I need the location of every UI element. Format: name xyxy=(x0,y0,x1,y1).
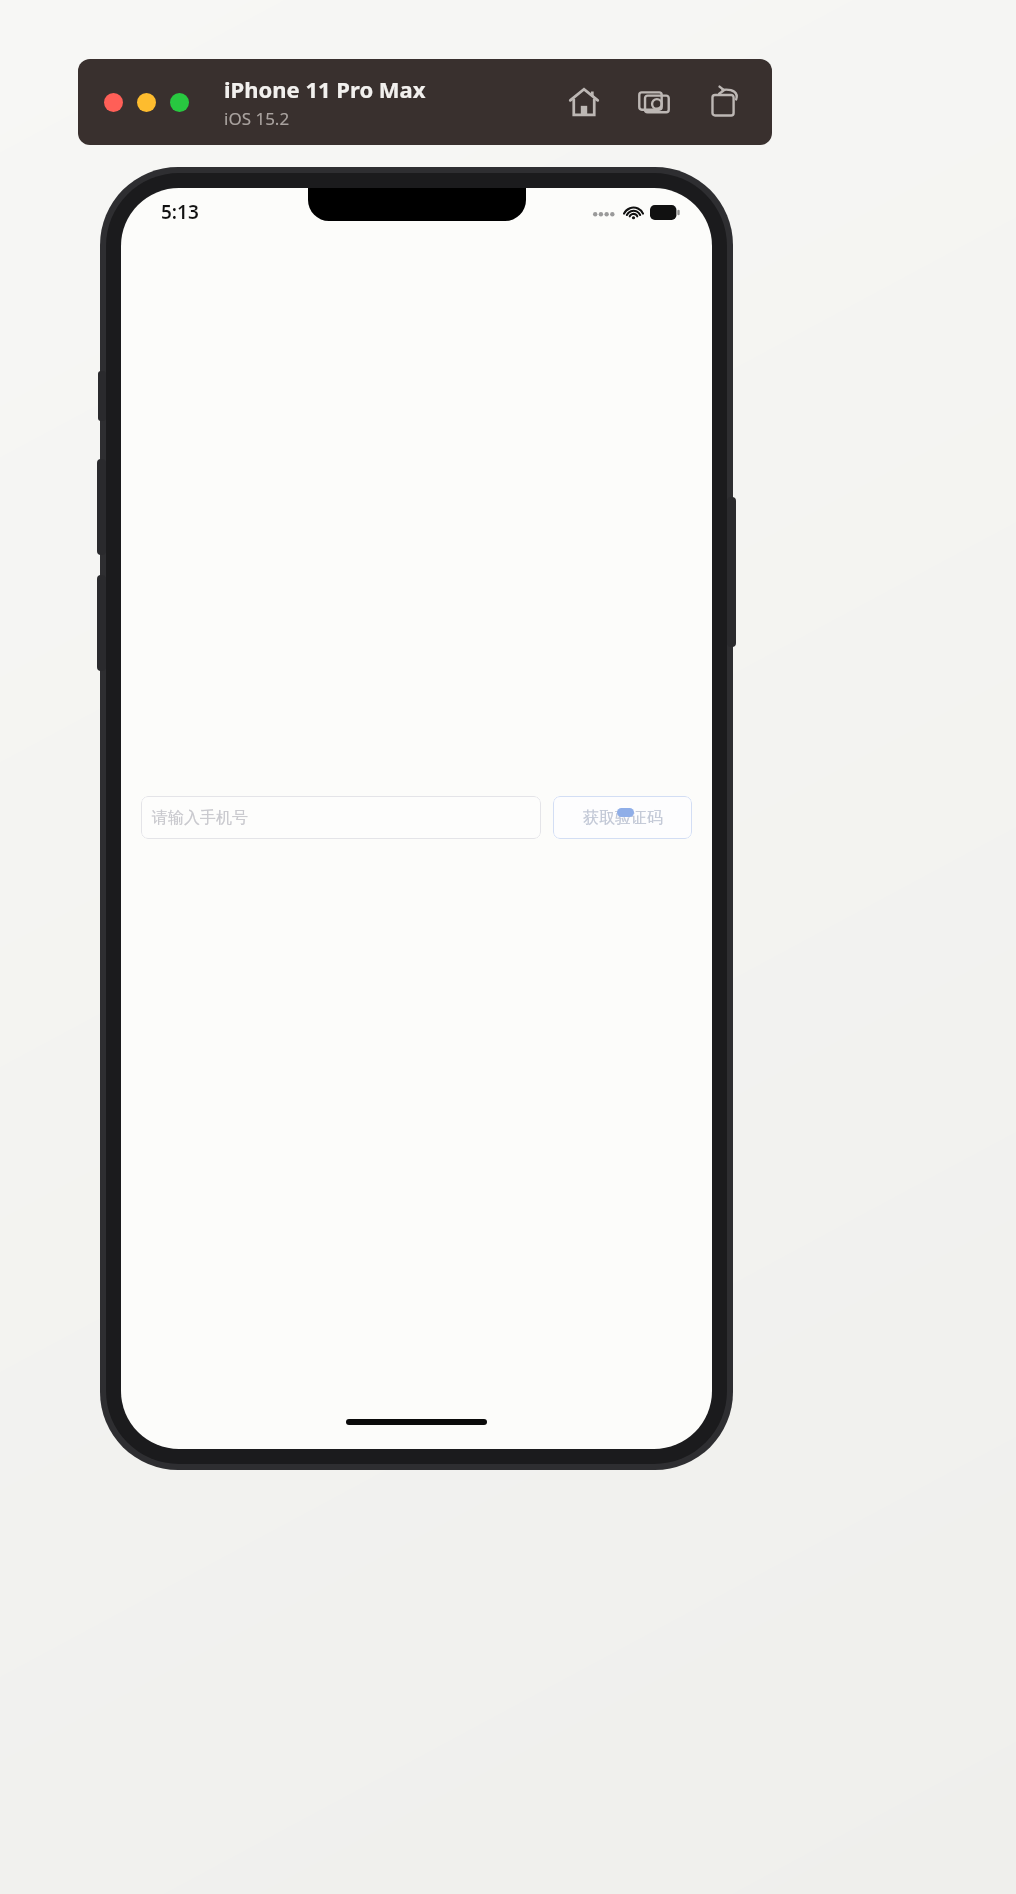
button[interactable]: Close xyxy=(104,93,123,112)
staticText: iOS 15.2 xyxy=(224,107,290,130)
button[interactable]: Home xyxy=(564,82,604,122)
button[interactable]: Screenshot xyxy=(634,82,674,122)
staticText: 请输入手机号 xyxy=(152,808,248,828)
staticText: 5:13 xyxy=(161,199,199,225)
button[interactable]: 请输入手机号 xyxy=(141,796,541,839)
staticText: iPhone 11 Pro Max xyxy=(224,74,426,104)
staticText: 获取验证码 xyxy=(583,808,663,828)
button[interactable]: 获取验证码 xyxy=(553,796,692,839)
button[interactable]: Zoom xyxy=(170,93,189,112)
button[interactable]: Rotate xyxy=(704,82,744,122)
button[interactable]: Minimize xyxy=(137,93,156,112)
